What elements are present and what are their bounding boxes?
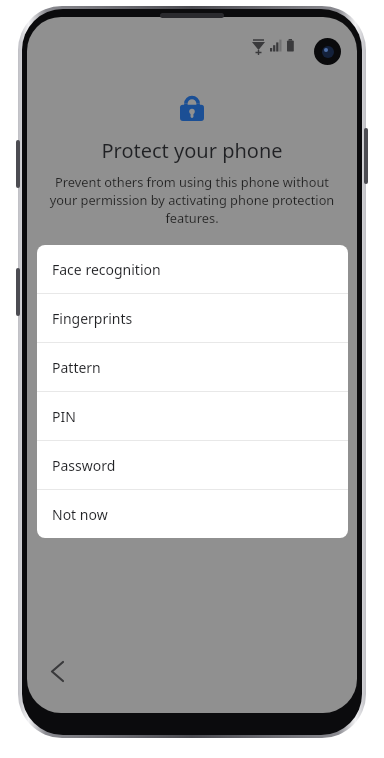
staticText: Prevent others from using this phone wit… [41,173,343,227]
staticText: Password [52,456,116,475]
staticText: Fingerprints [52,309,133,328]
button[interactable]: Face recognition [37,245,348,293]
button[interactable]: Not now [37,490,348,538]
button[interactable]: Fingerprints [37,294,348,342]
staticText: PIN [52,407,76,426]
staticText: Face recognition [52,260,161,279]
staticText: Protect your phone [101,137,283,164]
button[interactable]: Password [37,441,348,489]
staticText: Not now [52,505,108,524]
button[interactable]: Pattern [37,343,348,391]
button[interactable]: Back [35,649,79,693]
button[interactable]: PIN [37,392,348,440]
staticText: Pattern [52,358,101,377]
